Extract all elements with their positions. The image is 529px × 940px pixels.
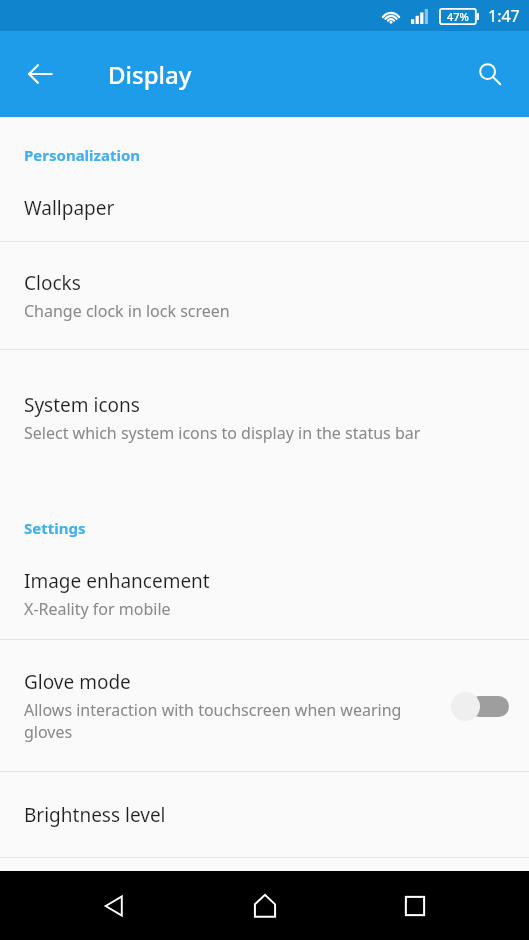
staticText: Brightness level xyxy=(24,802,166,828)
staticText: X-Reality for mobile xyxy=(24,598,171,620)
button[interactable]: Glove mode xyxy=(0,640,529,771)
button[interactable]: Image enhancement xyxy=(0,548,529,639)
button[interactable]: Brightness level xyxy=(0,772,529,857)
button[interactable]: Wallpaper xyxy=(0,175,529,241)
button[interactable]: System icons xyxy=(0,350,529,485)
button[interactable]: Glove mode toggle xyxy=(449,686,511,726)
staticText: Settings xyxy=(24,518,86,538)
staticText: Allows interaction with touchscreen when… xyxy=(24,699,441,743)
button[interactable]: Back xyxy=(77,871,151,940)
button[interactable]: Home xyxy=(228,871,302,940)
button[interactable]: Clocks xyxy=(0,242,529,349)
staticText: Display xyxy=(108,58,192,91)
staticText: Glove mode xyxy=(24,669,131,695)
staticText: System icons xyxy=(24,392,140,418)
staticText: Wallpaper xyxy=(24,195,115,221)
button[interactable]: Back xyxy=(10,44,70,104)
staticText: 1:47 xyxy=(488,5,520,27)
button[interactable]: Recent apps xyxy=(378,871,452,940)
staticText: Image enhancement xyxy=(24,568,210,594)
button[interactable]: Search xyxy=(461,45,519,103)
staticText: Change clock in lock screen xyxy=(24,300,230,322)
staticText: Personalization xyxy=(24,145,141,165)
staticText: 47% xyxy=(447,9,469,24)
staticText: Select which system icons to display in … xyxy=(24,422,421,444)
staticText: Clocks xyxy=(24,270,81,296)
